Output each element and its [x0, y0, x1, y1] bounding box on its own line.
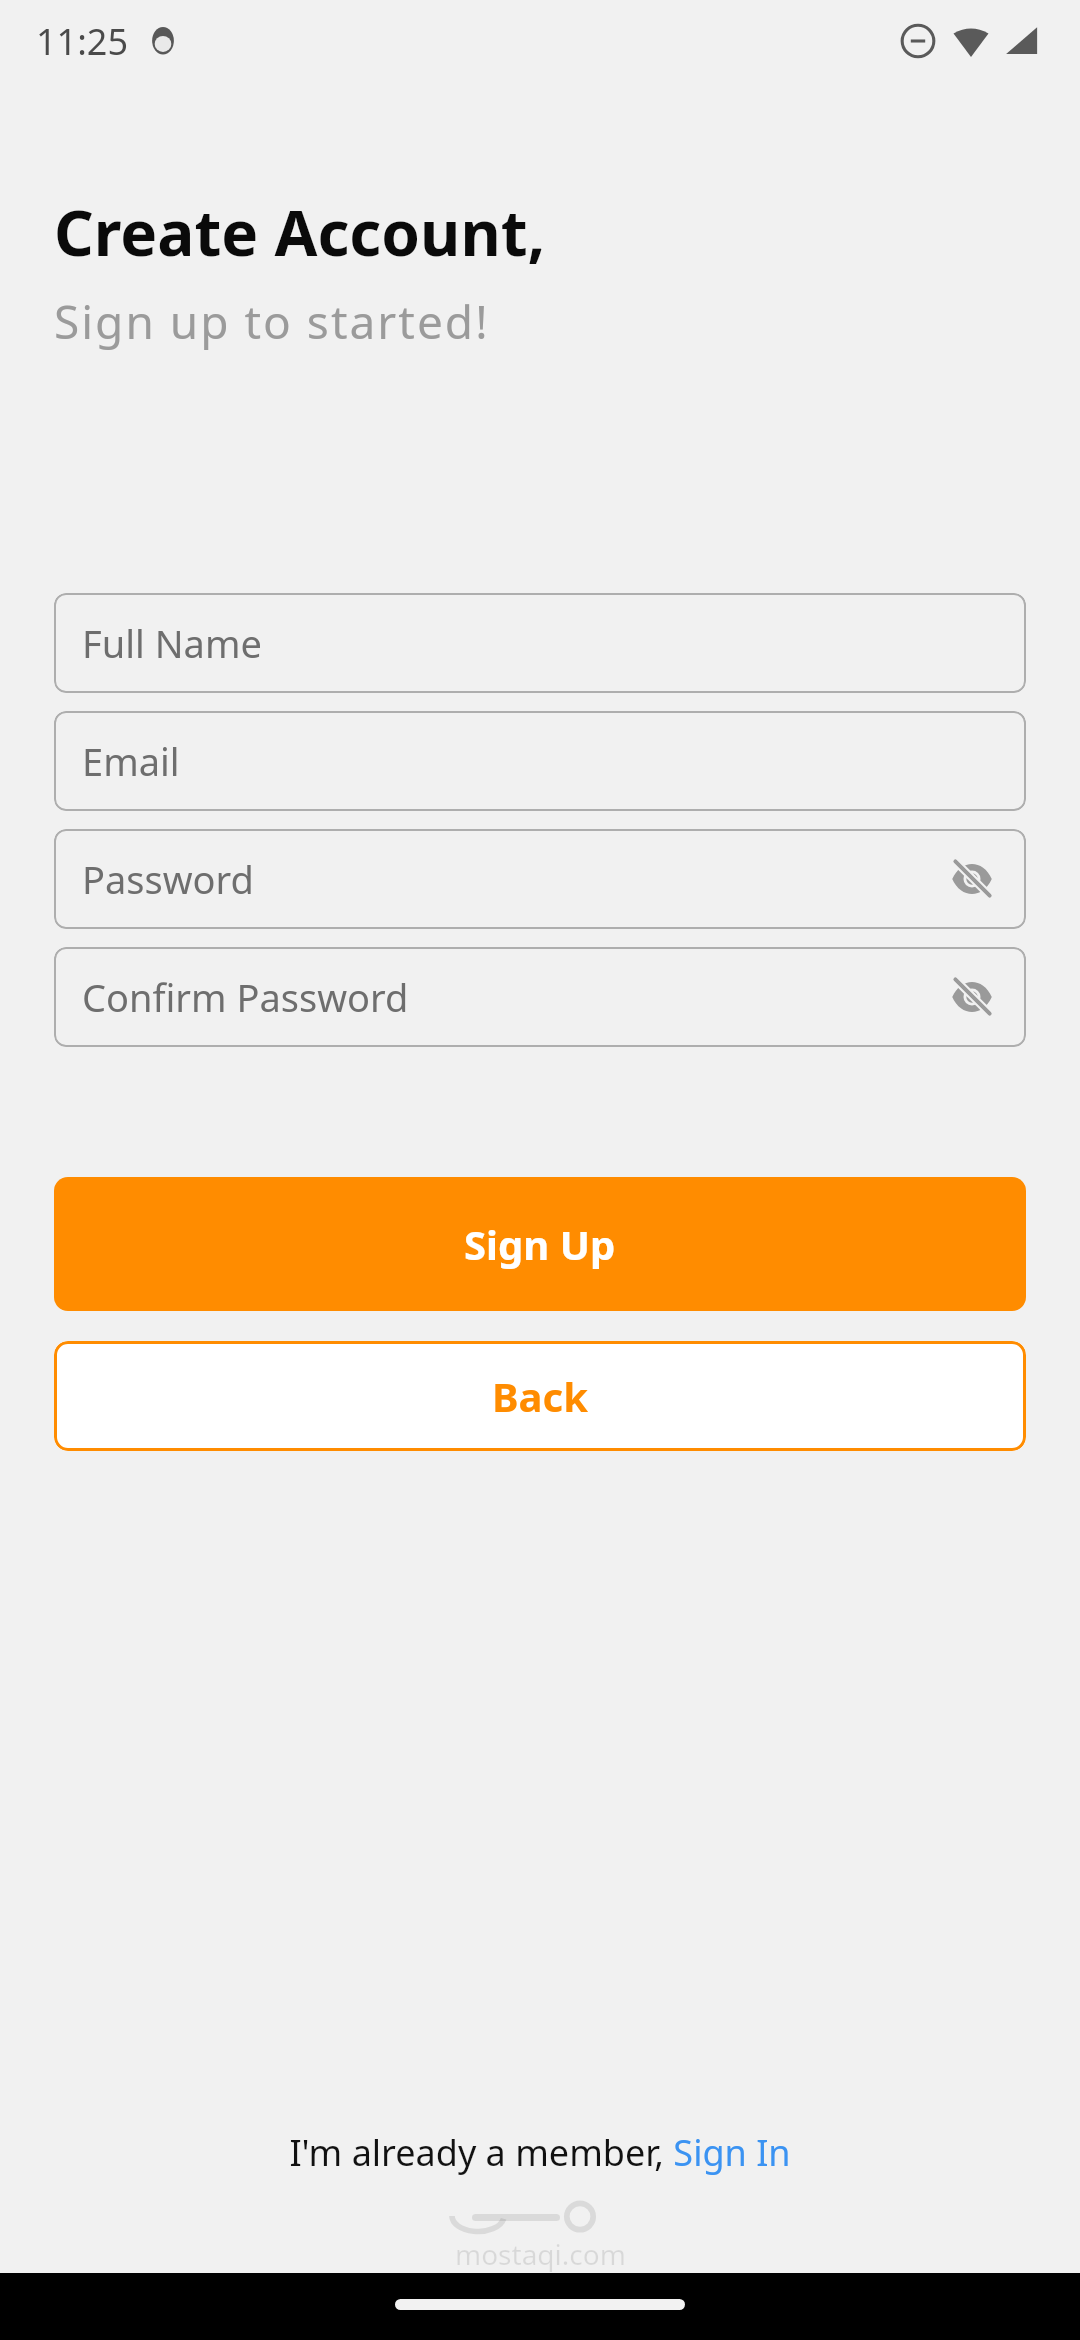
- staticText: Full Name: [82, 617, 262, 669]
- staticText: Password: [82, 853, 254, 905]
- button[interactable]: I'm already a member, Sign In: [281, 2124, 799, 2181]
- staticText: Create Account,: [54, 190, 546, 274]
- button[interactable]: Confirm Password: [54, 947, 1026, 1047]
- staticText: Sign Up: [464, 1217, 616, 1271]
- button[interactable]: Show password: [942, 849, 1002, 909]
- staticText: I'm already a member, Sign In: [289, 2128, 791, 2177]
- button[interactable]: Back: [54, 1341, 1026, 1451]
- button[interactable]: Full Name: [54, 593, 1026, 693]
- staticText: Sign up to started!: [54, 290, 490, 353]
- button[interactable]: Password: [54, 829, 1026, 929]
- staticText: mostaqi.com: [455, 2235, 626, 2273]
- button[interactable]: Email: [54, 711, 1026, 811]
- staticText: 11:25: [36, 17, 129, 66]
- staticText: Email: [82, 735, 180, 787]
- button[interactable]: Show password: [942, 967, 1002, 1027]
- staticText: Back: [492, 1369, 588, 1423]
- staticText: Confirm Password: [82, 971, 409, 1023]
- button[interactable]: Sign Up: [54, 1177, 1026, 1311]
